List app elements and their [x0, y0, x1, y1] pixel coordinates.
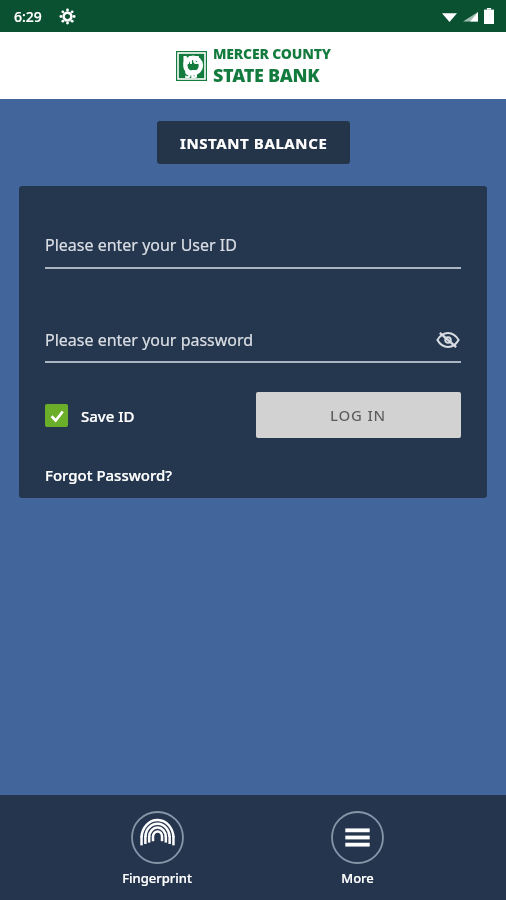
staticText: Forgot Password? [45, 465, 173, 485]
staticText: Fingerprint [122, 869, 192, 887]
button[interactable]: Show password [435, 327, 461, 353]
staticText: INSTANT BALANCE [180, 133, 328, 153]
staticText: LOG IN [330, 405, 387, 425]
staticText: MERCER COUNTY [213, 44, 331, 63]
button[interactable]: Save ID [45, 404, 135, 427]
button[interactable]: Forgot Password? [45, 465, 173, 485]
staticText: More [341, 869, 374, 887]
staticText: STATE BANK [213, 63, 320, 88]
button[interactable]: Please enter your User ID [45, 234, 461, 269]
staticText: MC [183, 53, 200, 67]
staticText: Please enter your password [45, 329, 435, 351]
button[interactable]: LOG IN [256, 392, 461, 438]
button[interactable]: INSTANT BALANCE [157, 121, 350, 164]
staticText: Please enter your User ID [45, 234, 237, 256]
button[interactable]: Fingerprint login [104, 809, 210, 889]
other: Fingerprint login [131, 811, 184, 864]
button[interactable]: More [313, 809, 402, 889]
button[interactable]: Please enter your password [45, 327, 461, 363]
staticText: Save ID [81, 406, 135, 426]
other: More [331, 811, 384, 864]
staticText: SB [185, 67, 198, 79]
staticText: 6:29 [14, 7, 42, 26]
